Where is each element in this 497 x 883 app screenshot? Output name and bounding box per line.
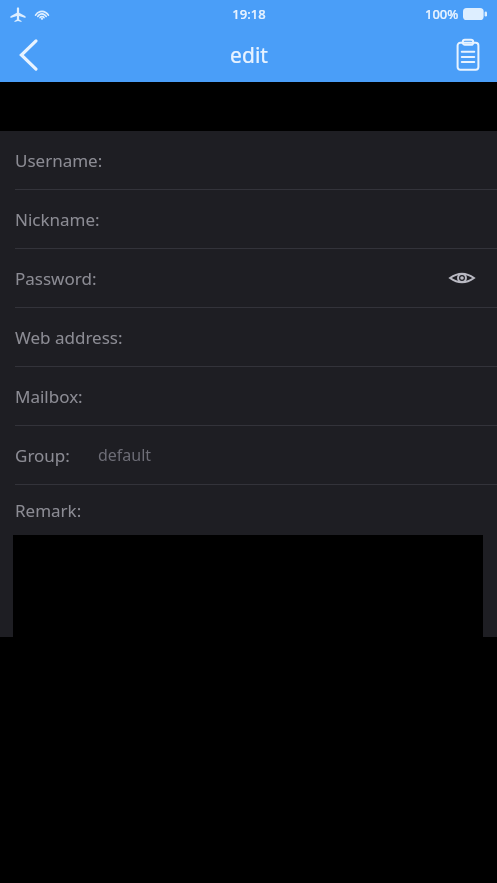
button[interactable]: Save: [439, 28, 497, 82]
staticText: 100%: [425, 5, 459, 23]
button[interactable]: Nickname:: [0, 190, 497, 248]
staticText: Nickname:: [15, 208, 100, 231]
button[interactable]: Username:: [0, 131, 497, 189]
button[interactable]: Back: [0, 28, 58, 82]
staticText: Web address:: [15, 326, 123, 349]
button[interactable]: Show password: [442, 258, 482, 298]
staticText: Group:: [15, 444, 70, 467]
staticText: 19:18: [232, 5, 266, 23]
staticText: Password:: [15, 267, 97, 290]
button[interactable]: Group:: [0, 426, 497, 484]
button[interactable]: Mailbox:: [0, 367, 497, 425]
staticText: default: [98, 444, 152, 466]
staticText: Remark:: [15, 499, 82, 522]
staticText: Username:: [15, 149, 103, 172]
button[interactable]: Web address:: [0, 308, 497, 366]
button[interactable]: Password:: [0, 249, 497, 307]
staticText: edit: [230, 41, 268, 70]
staticText: Mailbox:: [15, 385, 83, 408]
